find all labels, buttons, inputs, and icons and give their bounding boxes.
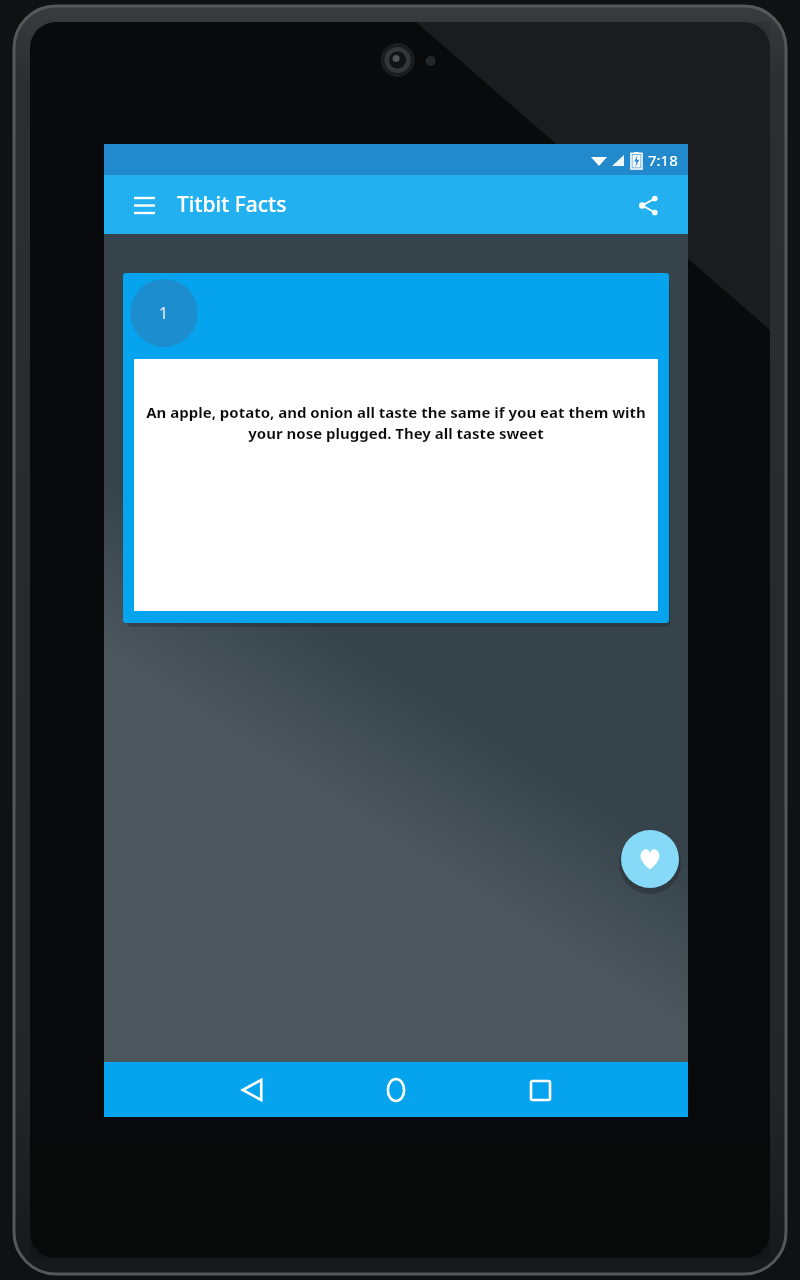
button[interactable]: Share — [626, 183, 670, 227]
button[interactable]: 1 — [123, 273, 669, 623]
button[interactable]: Recent apps — [516, 1066, 564, 1114]
staticText: An apple, potato, and onion all taste th… — [137, 402, 655, 444]
staticText: 7:18 — [648, 150, 678, 170]
button[interactable]: Back — [228, 1066, 276, 1114]
button[interactable]: Open navigation drawer — [126, 187, 162, 223]
staticText: Titbit Facts — [177, 190, 287, 219]
staticText: 1 — [159, 302, 169, 324]
button[interactable]: Home — [372, 1066, 420, 1114]
button[interactable]: Add to favourites — [621, 830, 679, 888]
